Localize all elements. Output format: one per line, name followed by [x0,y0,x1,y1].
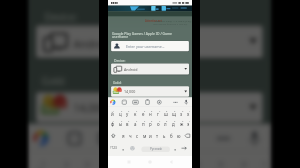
staticText: т [156,133,159,139]
staticText: 6 [151,110,153,113]
staticText: Заказ от 4.99$ — 4 799 ₸ (4.5$) [155,19,192,22]
staticText: р [149,121,152,127]
staticText: Android [124,67,138,72]
staticText: е [142,111,145,117]
staticText: и [149,133,152,139]
staticText: щ [172,111,176,117]
staticText: ?123 [110,146,117,150]
staticText: 9 [174,120,176,123]
staticText: 1 [189,120,191,123]
staticText: 8 [166,120,168,123]
staticText: н [149,111,152,117]
staticText: ч [129,133,132,139]
staticText: 2 [121,110,123,113]
staticText: 8 [166,110,168,113]
staticText: с [136,133,139,139]
staticText: ю [177,133,181,139]
staticText: 7 [159,120,161,123]
staticText: ц [119,111,122,117]
staticText: Google Play Games / Apple ID / Game [112,31,172,36]
staticText: 14,000 [74,100,108,114]
staticText: 6 [151,120,153,123]
staticText: Attention.net [145,19,162,22]
staticText: м [143,133,147,139]
staticText: к [103,164,111,168]
staticText: Русский [150,147,162,151]
staticText: 1 [113,120,115,123]
staticText: п [142,121,145,127]
staticText: ф [111,121,115,127]
staticText: о [157,121,160,127]
staticText: 5 [144,120,146,123]
staticText: ь [163,133,166,139]
staticText: Enter your username... [126,44,165,49]
staticText: 0 [182,120,184,123]
staticText: 9 [174,110,176,113]
staticText: 2 [121,120,123,123]
staticText: а [134,121,137,127]
staticText: 14,000 [124,89,136,94]
staticText: Android [74,36,114,51]
staticText: 5 [144,110,146,113]
staticText: з [180,111,183,117]
staticText: Gold: [113,80,122,85]
staticText: у [126,111,129,117]
other: Screen recording preview [108,0,192,168]
staticText: Gold: [41,74,68,88]
staticText: 4 [136,120,138,123]
staticText: 3 [128,110,130,113]
staticText: в [126,121,129,127]
staticText: 1 [113,110,115,113]
staticText: ы [119,121,123,127]
staticText: ш [164,111,168,117]
staticText: 1 [189,110,191,113]
staticText: ж [180,121,184,127]
staticText: 7 [159,110,161,113]
staticText: э [187,121,190,127]
staticText: й [111,111,114,117]
staticText: х [187,111,190,117]
staticText: 8 [196,161,202,168]
staticText: ш [190,164,202,168]
staticText: при заказе больше 5 000 ед. [153,22,188,25]
staticText: д [172,121,175,127]
staticText: 0 [182,110,184,113]
staticText: 4 [136,110,138,113]
staticText: б [170,133,173,139]
staticText: username [112,34,129,39]
staticText: Device: [44,10,79,24]
staticText: Device: [114,58,126,63]
staticText: л [164,121,167,127]
staticText: к [134,111,137,117]
staticText: 3 [128,120,130,123]
staticText: г [157,111,159,117]
staticText: я [122,133,125,139]
